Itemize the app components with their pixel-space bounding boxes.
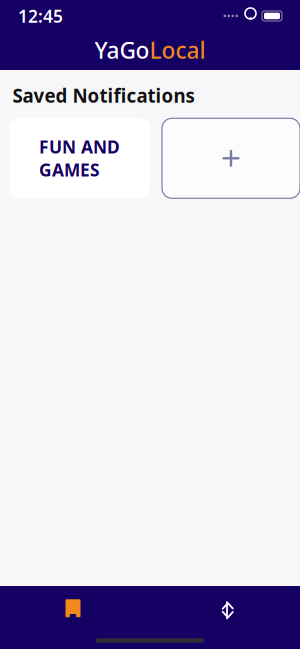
staticText: Saved Notifications [12,83,194,108]
staticText: 12:45 [18,4,63,27]
staticText: Local [149,35,205,65]
button[interactable]: Saved [28,590,118,630]
button[interactable]: Add notification [162,118,300,198]
staticText: YaGo [94,35,149,65]
button[interactable]: FUN AND GAMES [9,118,150,199]
staticText: FUN AND GAMES [39,135,120,181]
button[interactable]: Bluetooth [182,590,272,630]
